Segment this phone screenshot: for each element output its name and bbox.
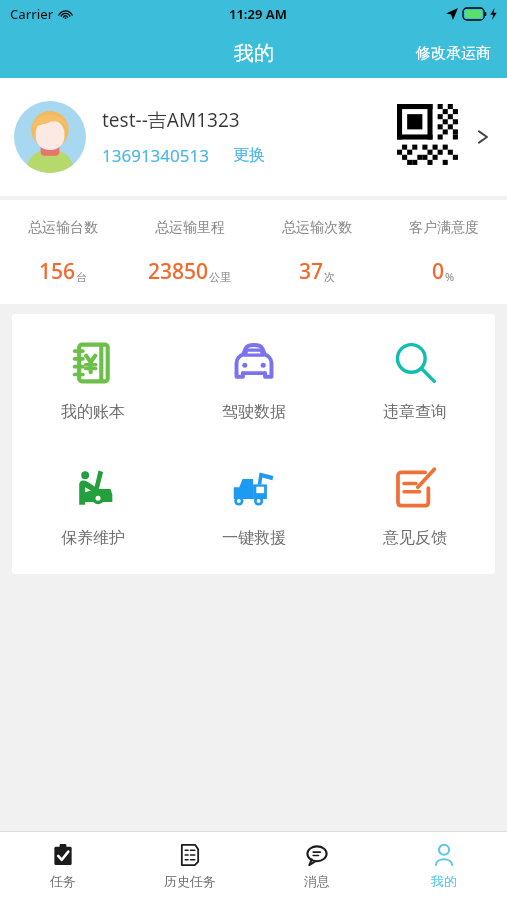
button[interactable]: 客户满意度 [380,213,507,292]
button[interactable]: 意见反馈 [334,462,495,552]
button[interactable]: 我的账本 [12,336,173,426]
staticText: 次 [324,270,335,284]
staticText: 13691340513 [102,144,209,167]
button[interactable]: 更换 [231,143,267,167]
staticText: 总运输台数 [28,219,98,237]
staticText: 我的账本 [61,402,125,422]
button[interactable]: 历史任务 [126,832,253,900]
button[interactable]: QR code [397,104,463,170]
staticText: 37 [299,257,324,286]
staticText: 驾驶数据 [222,402,286,422]
staticText: 保养维护 [61,528,125,548]
button[interactable]: 我的 [380,832,507,900]
staticText: 总运输里程 [155,219,225,237]
button[interactable]: 总运输次数 [253,213,380,292]
staticText: 我的 [234,41,274,66]
staticText: % [445,269,455,284]
staticText: 我的 [431,873,457,889]
button[interactable]: 保养维护 [12,462,173,552]
button[interactable]: 驾驶数据 [173,336,334,426]
staticText: 11:29 AM [229,5,288,23]
staticText: 修改承运商 [416,44,491,63]
staticText: 任务 [50,873,76,889]
staticText: 156 [39,257,76,286]
staticText: 更换 [233,145,265,165]
staticText: 意见反馈 [383,528,447,548]
staticText: 23850 [148,257,209,286]
button[interactable]: 违章查询 [334,336,495,426]
button[interactable]: 消息 [253,832,380,900]
button[interactable]: 任务 [0,832,126,900]
staticText: 消息 [304,873,330,889]
staticText: 台 [76,270,87,284]
staticText: 客户满意度 [409,219,479,237]
staticText: 违章查询 [383,402,447,422]
button[interactable]: 修改承运商 [400,34,507,73]
button[interactable]: 总运输台数 [0,213,126,292]
staticText: 总运输次数 [282,219,352,237]
staticText: Carrier [10,5,54,23]
staticText: 公里 [209,270,231,284]
button[interactable]: 总运输里程 [126,213,253,292]
staticText: test--吉AM1323 [102,107,240,133]
staticText: 一键救援 [222,528,286,548]
button[interactable]: test--吉AM1323 [0,78,507,196]
staticText: 历史任务 [164,873,216,889]
staticText: 0 [432,257,445,286]
button[interactable]: 一键救援 [173,462,334,552]
